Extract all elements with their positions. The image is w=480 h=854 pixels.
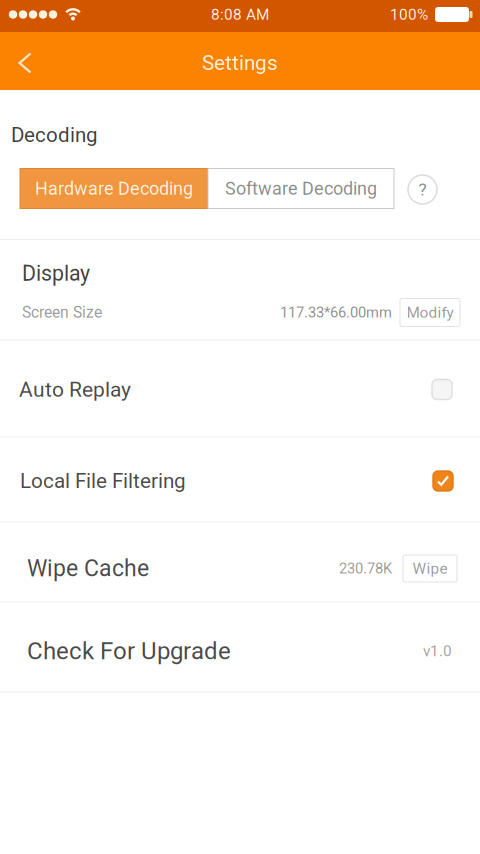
staticText: Auto Replay — [19, 377, 131, 402]
button[interactable]: Help — [408, 175, 437, 204]
staticText: Software Decoding — [225, 178, 377, 199]
button[interactable]: Local File Filtering on — [433, 471, 453, 491]
button[interactable]: Back — [3, 41, 47, 85]
staticText: Check For Upgrade — [27, 637, 231, 665]
staticText: Modify — [406, 303, 453, 321]
staticText: Hardware Decoding — [35, 178, 193, 199]
button[interactable]: Modify — [400, 298, 460, 326]
staticText: Screen Size — [22, 303, 102, 322]
staticText: 100% — [390, 5, 428, 23]
button[interactable]: Check For Upgrade — [0, 606, 480, 695]
button[interactable]: Wipe — [403, 555, 457, 582]
button[interactable]: Auto Replay off — [432, 379, 452, 399]
staticText: Settings — [202, 51, 278, 75]
staticText: Wipe Cache — [27, 555, 149, 582]
staticText: Wipe — [412, 559, 447, 577]
staticText: ? — [418, 179, 426, 200]
button[interactable]: Software Decoding — [208, 168, 394, 208]
button[interactable]: Hardware Decoding — [20, 168, 208, 208]
staticText: v1.0 — [423, 642, 452, 660]
staticText: Local File Filtering — [20, 469, 186, 493]
staticText: Decoding — [11, 123, 98, 147]
staticText: 117.33*66.00mm — [280, 304, 392, 321]
staticText: 230.78K — [339, 560, 392, 577]
staticText: 8:08 AM — [211, 5, 269, 23]
staticText: Display — [22, 261, 90, 286]
